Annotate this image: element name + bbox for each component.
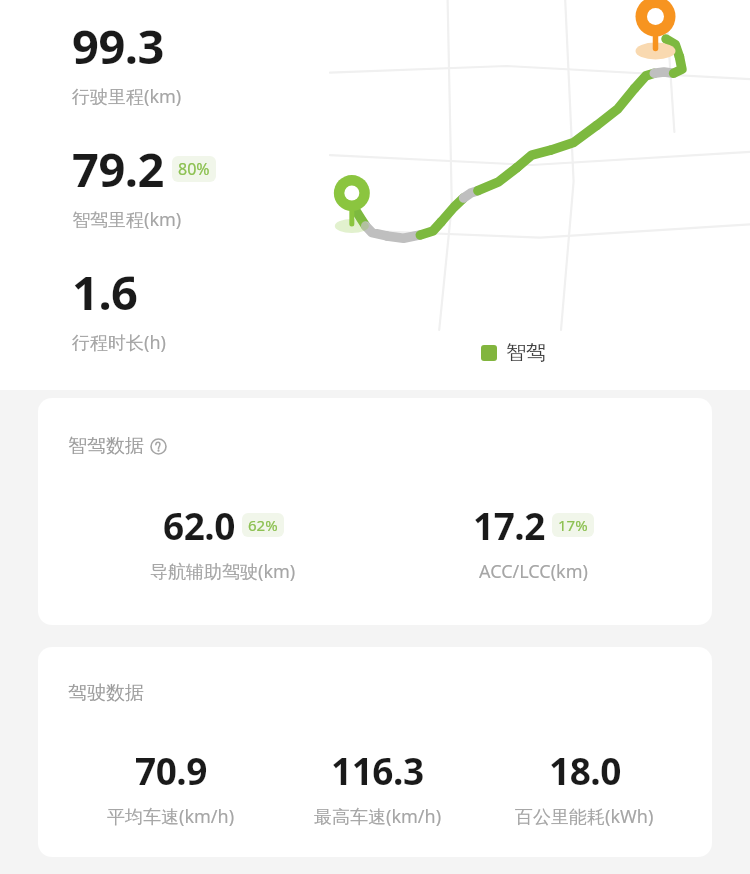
staticText: 18.0 <box>549 745 621 795</box>
staticText: 17.2 <box>473 500 545 550</box>
staticText: 99.3 <box>72 14 164 78</box>
staticText: 80% <box>178 158 210 180</box>
staticText: 智驾里程(km) <box>72 207 182 232</box>
staticText: 1.6 <box>72 260 138 324</box>
button[interactable]: 驾驶数据 <box>38 647 712 857</box>
button[interactable]: 智驾数据 <box>38 398 712 625</box>
staticText: 70.9 <box>135 745 207 795</box>
staticText: 百公里能耗(kWh) <box>515 804 654 829</box>
staticText: 智驾数据 <box>68 434 144 458</box>
staticText: 79.2 <box>72 137 164 201</box>
staticText: 智驾 <box>506 340 546 365</box>
staticText: ACC/LCC(km) <box>479 559 588 584</box>
staticText: 116.3 <box>331 745 424 795</box>
staticText: 平均车速(km/h) <box>107 804 235 829</box>
staticText: 行驶里程(km) <box>72 84 182 109</box>
staticText: 行程时长(h) <box>72 330 166 355</box>
staticText: 17% <box>558 515 588 535</box>
staticText: 导航辅助驾驶(km) <box>150 559 296 584</box>
staticText: 最高车速(km/h) <box>314 804 442 829</box>
staticText: 62.0 <box>163 500 235 550</box>
staticText: 62% <box>248 515 278 535</box>
other: 帮助说明 <box>150 438 167 455</box>
staticText: 驾驶数据 <box>68 681 144 705</box>
